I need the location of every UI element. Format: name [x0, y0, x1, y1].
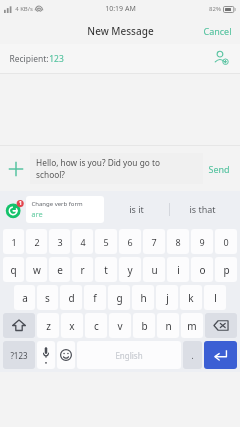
staticText: 7: [151, 236, 157, 248]
button[interactable]: o: [191, 257, 213, 282]
staticText: v: [117, 319, 123, 333]
button[interactable]: s: [37, 285, 58, 310]
staticText: Send: [208, 163, 230, 175]
staticText: g: [116, 291, 123, 305]
staticText: b: [141, 319, 148, 333]
button[interactable]: e: [49, 257, 70, 282]
staticText: 8: [175, 236, 181, 248]
button[interactable]: u: [143, 257, 165, 282]
button[interactable]: 3: [49, 229, 70, 254]
button[interactable]: 1: [3, 229, 24, 254]
button[interactable]: Add attachment: [5, 158, 27, 180]
staticText: 3: [57, 236, 63, 248]
button[interactable]: New Message: [0, 17, 240, 44]
button[interactable]: c: [85, 313, 107, 338]
button[interactable]: Voice input: [37, 341, 55, 369]
button[interactable]: b: [133, 313, 155, 338]
button[interactable]: g: [108, 285, 130, 310]
button[interactable]: Grammarly suggestion: [5, 200, 24, 219]
button[interactable]: a: [14, 285, 35, 310]
staticText: are: [31, 209, 43, 219]
staticText: r: [80, 263, 85, 277]
button[interactable]: f: [84, 285, 106, 310]
staticText: u: [151, 263, 158, 277]
staticText: 2: [34, 236, 40, 248]
staticText: New Message: [87, 24, 154, 38]
staticText: z: [46, 319, 51, 333]
button[interactable]: 0: [215, 229, 237, 254]
staticText: t: [104, 263, 108, 277]
staticText: is it: [129, 203, 144, 215]
button[interactable]: 7: [143, 229, 165, 254]
button[interactable]: 5: [95, 229, 117, 254]
staticText: f: [93, 291, 97, 305]
staticText: w: [33, 263, 41, 277]
staticText: ?123: [10, 350, 28, 361]
button[interactable]: z: [37, 313, 59, 338]
button[interactable]: English: [77, 341, 181, 369]
button[interactable]: Change verb form: [26, 196, 104, 223]
button[interactable]: 8: [167, 229, 189, 254]
staticText: l: [214, 291, 217, 305]
staticText: k: [188, 291, 194, 305]
button[interactable]: v: [109, 313, 131, 338]
button[interactable]: i: [167, 257, 189, 282]
button[interactable]: Enter: [204, 341, 237, 369]
staticText: Cancel: [203, 25, 232, 37]
button[interactable]: Hello, how is you? Did you go to: [30, 153, 203, 184]
button[interactable]: Cancel: [195, 20, 240, 42]
staticText: .: [191, 350, 194, 361]
staticText: a: [22, 291, 28, 305]
staticText: 1: [19, 200, 22, 207]
staticText: d: [68, 291, 75, 305]
button[interactable]: h: [132, 285, 154, 310]
button[interactable]: x: [61, 313, 83, 338]
button[interactable]: k: [180, 285, 202, 310]
staticText: j: [166, 291, 169, 305]
staticText: 82%: [209, 5, 221, 13]
staticText: Hello, how is you? Did you go to: [36, 157, 160, 168]
button[interactable]: m: [181, 313, 203, 338]
button[interactable]: p: [215, 257, 237, 282]
staticText: h: [140, 291, 147, 305]
button[interactable]: d: [60, 285, 82, 310]
button[interactable]: n: [157, 313, 179, 338]
button[interactable]: Emoji: [57, 341, 75, 369]
staticText: n: [165, 319, 172, 333]
button[interactable]: r: [72, 257, 93, 282]
staticText: 5: [103, 236, 109, 248]
button[interactable]: 9: [191, 229, 213, 254]
button[interactable]: is that: [170, 191, 235, 227]
button[interactable]: is it: [104, 191, 169, 227]
button[interactable]: Shift: [3, 313, 35, 338]
button[interactable]: ?123: [3, 341, 35, 369]
button[interactable]: 6: [119, 229, 141, 254]
staticText: 0: [223, 236, 229, 248]
button[interactable]: Add contact: [212, 49, 231, 68]
staticText: is that: [189, 203, 216, 215]
staticText: English: [115, 350, 143, 361]
button[interactable]: Recipient:: [0, 44, 240, 73]
button[interactable]: l: [204, 285, 226, 310]
staticText: school?: [36, 169, 65, 180]
staticText: m: [187, 319, 197, 333]
button[interactable]: w: [26, 257, 47, 282]
button[interactable]: 4: [72, 229, 93, 254]
button[interactable]: 2: [26, 229, 47, 254]
button[interactable]: t: [95, 257, 117, 282]
staticText: 1: [11, 236, 17, 248]
button[interactable]: q: [3, 257, 24, 282]
staticText: i: [177, 263, 180, 277]
staticText: y: [127, 263, 133, 277]
staticText: c: [94, 319, 99, 333]
button[interactable]: Send: [203, 157, 235, 181]
button[interactable]: Period: [183, 341, 202, 369]
staticText: o: [199, 263, 206, 277]
staticText: e: [57, 263, 63, 277]
staticText: Change verb form: [31, 200, 83, 208]
staticText: Recipient:: [9, 53, 49, 65]
button[interactable]: y: [119, 257, 141, 282]
button[interactable]: Backspace: [205, 313, 237, 338]
button[interactable]: j: [156, 285, 178, 310]
staticText: 6: [127, 236, 133, 248]
